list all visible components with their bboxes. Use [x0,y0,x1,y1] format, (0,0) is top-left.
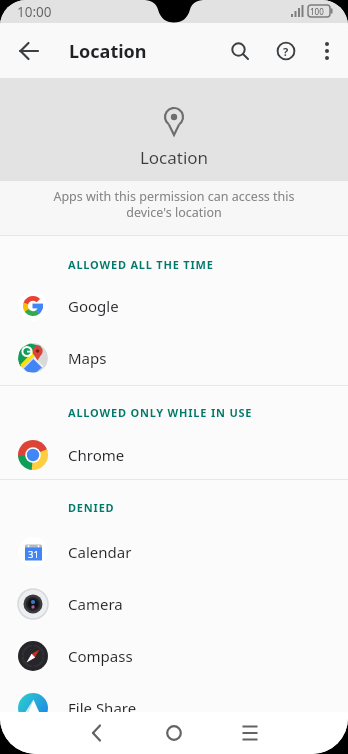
staticText: 31 [28,548,39,561]
button[interactable] [9,31,49,71]
button[interactable] [230,713,270,753]
staticText: Location [69,39,147,64]
button[interactable] [220,31,260,71]
staticText: 100 [310,6,324,17]
button[interactable]: Maps [0,332,348,384]
staticText: Camera [68,594,123,614]
staticText: Compass [68,646,133,666]
button[interactable]: ? [266,31,306,71]
staticText: Maps [68,348,107,368]
button[interactable]: Google [0,280,348,332]
staticText: Calendar [68,542,132,562]
button[interactable]: Chrome [0,429,348,481]
staticText: Apps with this permission can access thi… [0,188,348,221]
button[interactable] [307,31,347,71]
staticText: ALLOWED ALL THE TIME [68,257,214,272]
button[interactable]: Camera [0,578,348,630]
staticText: Chrome [68,445,125,465]
button[interactable]: 31 [0,526,348,578]
button[interactable]: Compass [0,630,348,682]
staticText: Location [0,146,348,169]
staticText: Google [68,296,119,316]
button[interactable]: File Share [0,682,348,734]
staticText: ALLOWED ONLY WHILE IN USE [68,405,253,420]
staticText: DENIED [68,500,115,515]
staticText: 10:00 [17,3,52,21]
staticText: File Share [68,698,137,718]
button[interactable] [77,713,117,753]
button[interactable] [154,713,194,753]
staticText: ? [283,44,289,59]
